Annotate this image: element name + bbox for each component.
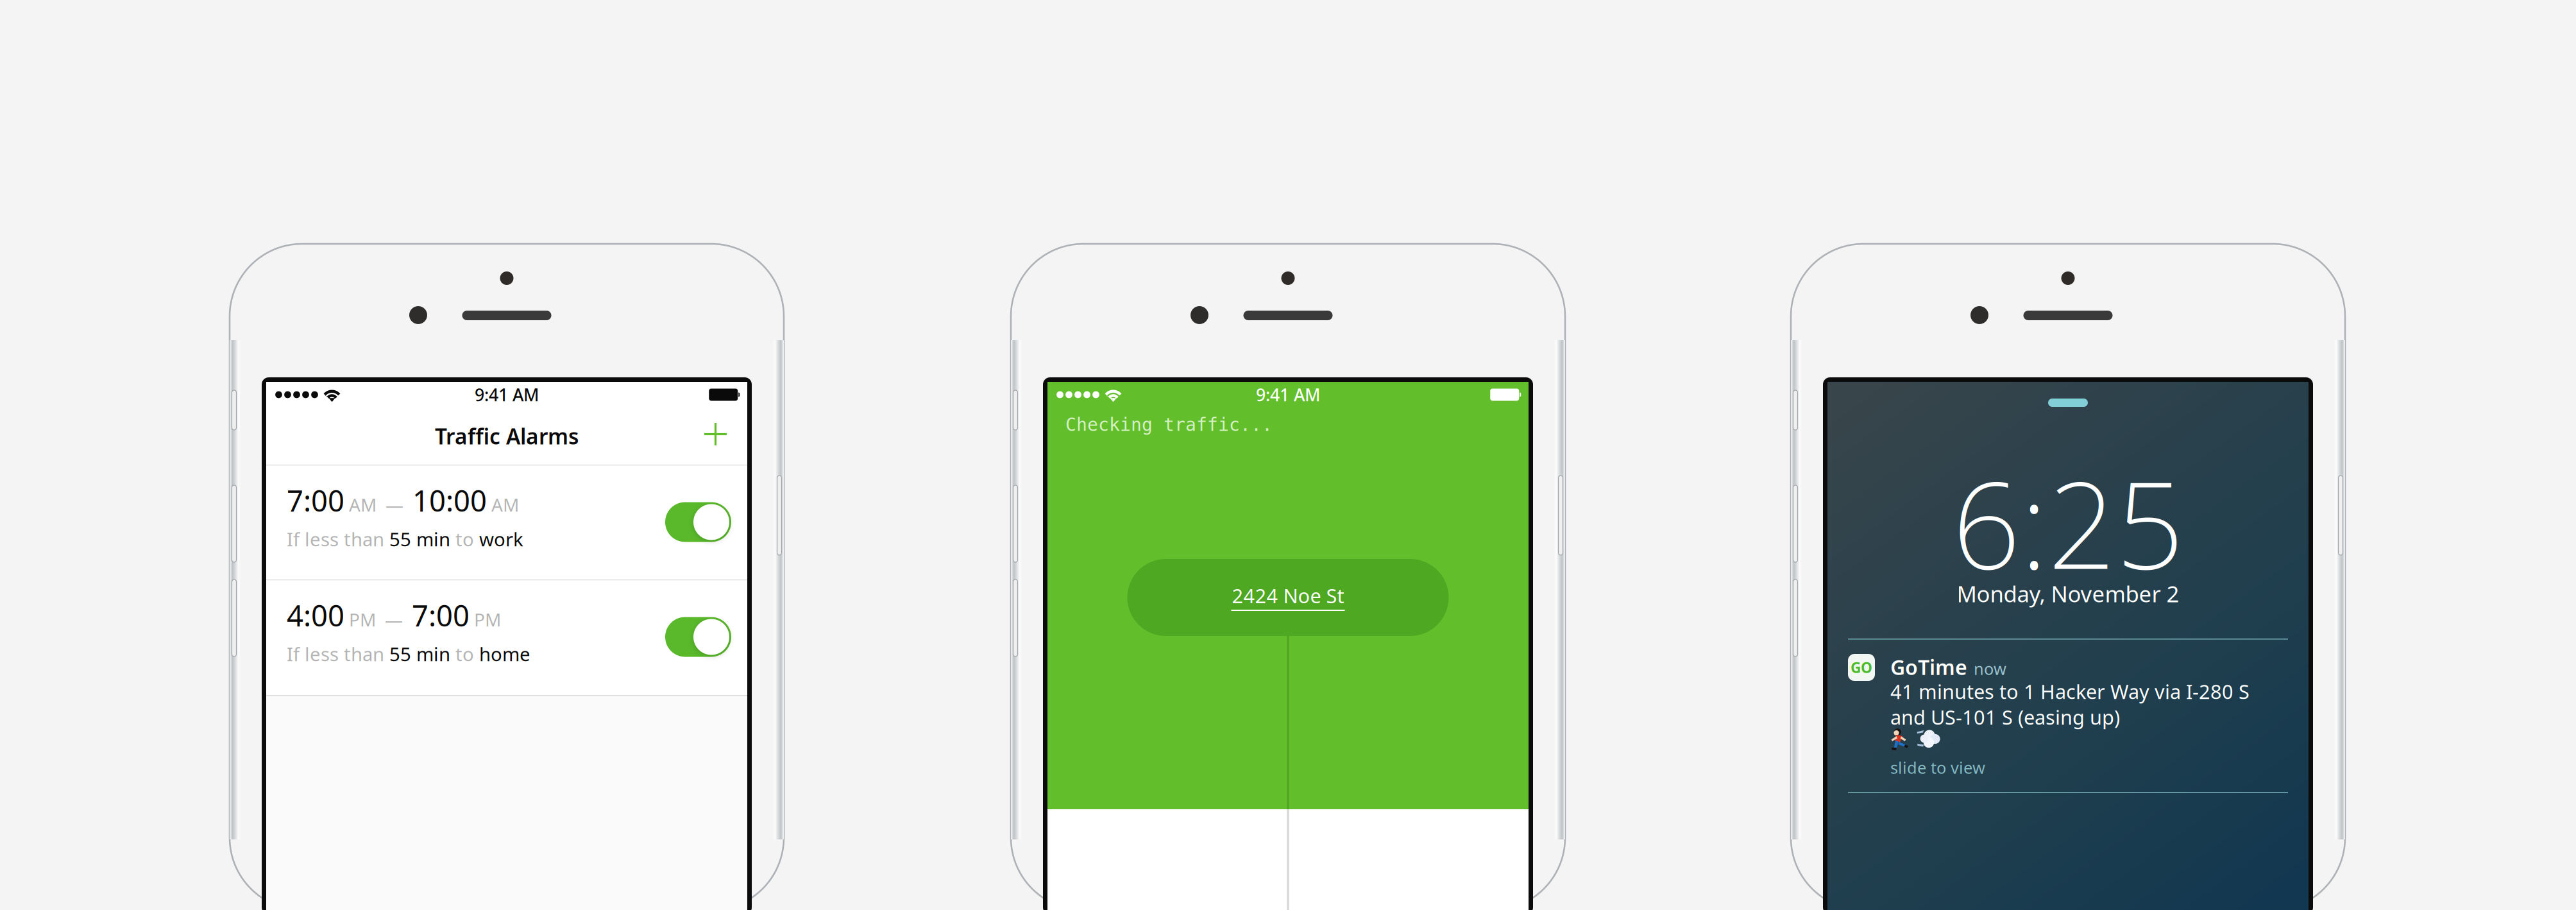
staticText: 9:41 AM — [1256, 383, 1320, 406]
button[interactable]: Add alarm — [684, 409, 747, 463]
staticText: AM — [487, 493, 519, 517]
staticText: 6:25 — [1952, 443, 2184, 602]
staticText: GoTime — [1890, 653, 1967, 681]
staticText: If less than — [287, 527, 389, 552]
staticText: 10:00 — [412, 481, 487, 520]
staticText: Monday, November 2 — [1957, 579, 2179, 608]
staticText: slide to view — [1890, 757, 1985, 778]
button[interactable]: 4:00 — [266, 580, 747, 695]
staticText: now — [1974, 658, 2006, 679]
staticText: 9:41 AM — [475, 383, 539, 406]
staticText: PM — [470, 608, 501, 631]
button[interactable]: 7:00 — [266, 466, 747, 580]
staticText: — — [376, 608, 412, 631]
staticText: 55 min — [389, 641, 450, 666]
staticText: AM — [344, 493, 377, 517]
staticText: PM — [344, 608, 376, 631]
staticText: home — [479, 641, 530, 666]
staticText: — — [377, 493, 412, 517]
staticText: Traffic Alarms — [435, 422, 579, 450]
staticText: to — [450, 527, 479, 552]
staticText: 41 minutes to 1 Hacker Way via I-280 S — [1890, 678, 2250, 704]
staticText: 2424 Noe St — [1232, 582, 1344, 609]
staticText: 7:00 — [412, 596, 470, 634]
staticText: 55 min — [389, 527, 450, 552]
staticText: GO — [1851, 658, 1872, 677]
staticText: to — [450, 641, 479, 666]
staticText: Checking traffic... — [1065, 415, 1273, 435]
staticText: and US-101 S (easing up) — [1890, 704, 2120, 730]
staticText: 7:00 — [287, 481, 344, 520]
staticText: work — [479, 527, 523, 552]
staticText: 4:00 — [287, 596, 344, 634]
button[interactable]: GO — [1827, 640, 2309, 793]
staticText: If less than — [287, 641, 389, 666]
button[interactable]: 2424 Noe St — [1127, 559, 1449, 636]
